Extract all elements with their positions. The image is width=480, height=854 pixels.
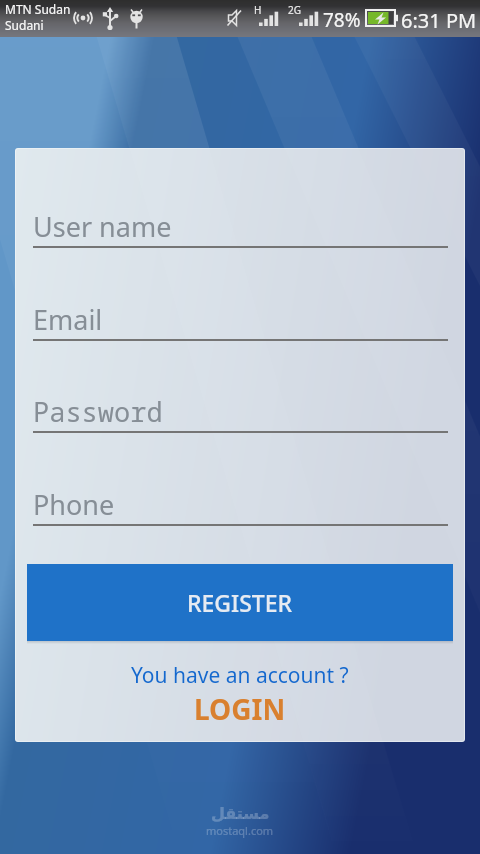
- staticText: مستقل: [211, 804, 270, 823]
- button[interactable]: User name: [33, 208, 448, 248]
- staticText: Password: [33, 393, 163, 430]
- staticText: LOGIN: [194, 690, 286, 724]
- button[interactable]: REGISTER: [27, 564, 453, 641]
- staticText: H: [254, 3, 262, 17]
- button[interactable]: You have an account ?: [15, 660, 465, 690]
- staticText: REGISTER: [187, 587, 293, 618]
- staticText: 6:31 PM: [401, 7, 477, 34]
- staticText: Phone: [33, 486, 115, 523]
- staticText: Sudani: [5, 17, 44, 33]
- button[interactable]: Phone: [33, 486, 448, 526]
- button[interactable]: LOGIN: [15, 690, 465, 724]
- staticText: 2G: [288, 3, 301, 17]
- staticText: 78%: [323, 7, 361, 33]
- button[interactable]: Password: [33, 393, 448, 433]
- button[interactable]: Email: [33, 301, 448, 341]
- staticText: User name: [33, 208, 172, 245]
- staticText: You have an account ?: [131, 661, 349, 690]
- staticText: Email: [33, 301, 103, 338]
- staticText: MTN Sudan: [5, 1, 71, 17]
- staticText: mostaql.com: [206, 823, 274, 838]
